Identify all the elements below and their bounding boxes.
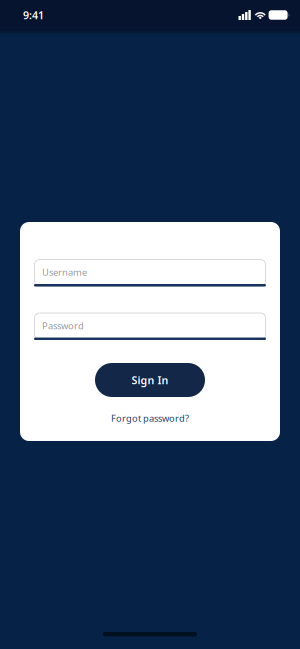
button[interactable]: Forgot password? bbox=[111, 412, 189, 424]
button[interactable]: Password bbox=[34, 312, 266, 340]
staticText: Sign In bbox=[131, 373, 168, 387]
button[interactable]: Sign In bbox=[95, 363, 205, 397]
button[interactable]: Username bbox=[34, 259, 266, 286]
staticText: Forgot password? bbox=[111, 412, 189, 424]
staticText: 9:41 bbox=[23, 8, 44, 22]
staticText: Password bbox=[42, 320, 84, 332]
staticText: Username bbox=[42, 266, 87, 278]
